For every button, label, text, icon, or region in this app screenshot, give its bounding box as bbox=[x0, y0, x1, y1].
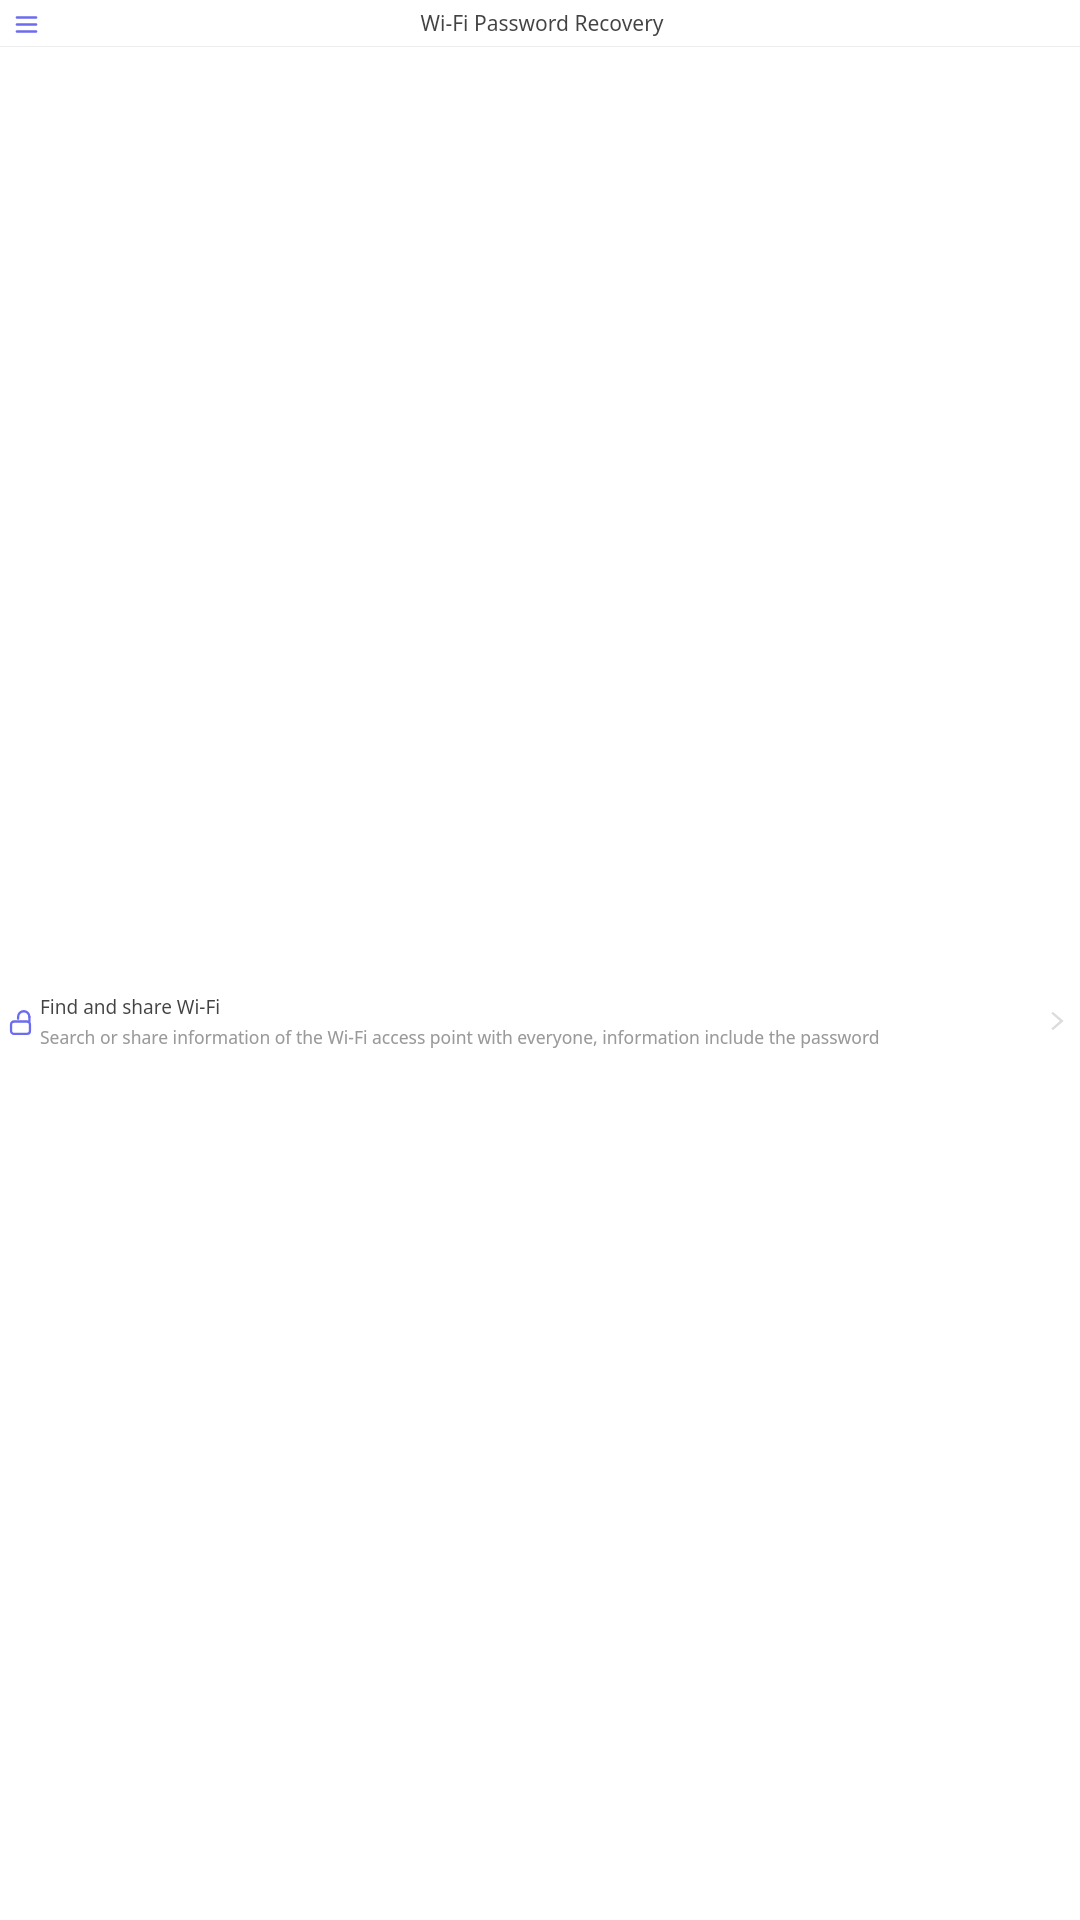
button[interactable]: Find and share Wi-Fi bbox=[0, 123, 1080, 1920]
staticText: Wi-Fi Password Recovery bbox=[420, 9, 664, 38]
staticText: Find and share Wi-Fi bbox=[40, 994, 221, 1020]
button[interactable]: Open navigation menu bbox=[6, 4, 46, 44]
staticText: Search or share information of the Wi-Fi… bbox=[40, 1025, 880, 1049]
